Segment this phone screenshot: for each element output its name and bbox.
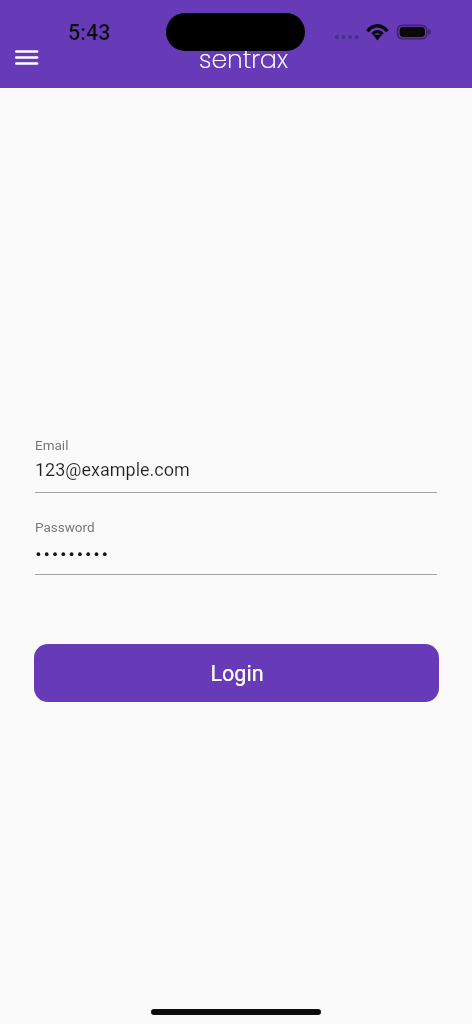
- staticText: Password: [35, 519, 95, 535]
- staticText: 5:43: [68, 20, 111, 45]
- button[interactable]: Login: [34, 644, 439, 702]
- staticText: sentrax: [199, 42, 288, 77]
- button[interactable]: Open navigation menu: [3, 34, 50, 81]
- button[interactable]: Email: [35, 430, 437, 493]
- staticText: Login: [210, 661, 264, 686]
- button[interactable]: Password: [35, 512, 437, 575]
- staticText: 123@example.com: [35, 459, 190, 480]
- staticText: Email: [35, 437, 69, 453]
